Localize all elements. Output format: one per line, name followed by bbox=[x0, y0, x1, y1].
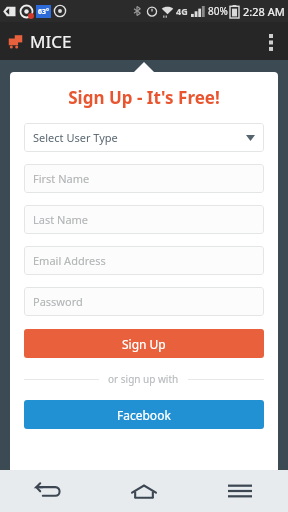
button[interactable]: Back bbox=[0, 470, 96, 512]
staticText: First Name bbox=[33, 171, 90, 186]
staticText: 80% bbox=[208, 4, 228, 18]
button[interactable]: Facebook bbox=[24, 400, 264, 429]
staticText: Sign Up bbox=[122, 336, 166, 352]
staticText: 63° bbox=[38, 7, 49, 17]
staticText: Last Name bbox=[33, 212, 89, 227]
button[interactable]: Password bbox=[24, 287, 264, 316]
staticText: Password bbox=[33, 294, 83, 309]
staticText: Sign Up - It's Free! bbox=[24, 86, 264, 109]
staticText: Email Address bbox=[33, 253, 106, 268]
button[interactable]: Last Name bbox=[24, 205, 264, 234]
staticText: Select User Type bbox=[33, 130, 246, 145]
staticText: 2:28 AM bbox=[243, 4, 285, 19]
button[interactable]: Email Address bbox=[24, 246, 264, 275]
staticText: MICE bbox=[30, 30, 72, 53]
staticText: 4G bbox=[176, 5, 188, 17]
staticText: Facebook bbox=[117, 407, 171, 423]
button[interactable]: More options bbox=[254, 22, 288, 60]
staticText: or sign up with bbox=[108, 372, 179, 386]
button[interactable]: Select User Type bbox=[24, 123, 264, 152]
button[interactable]: Home bbox=[96, 470, 192, 512]
button[interactable]: Menu bbox=[192, 470, 288, 512]
button[interactable]: First Name bbox=[24, 164, 264, 193]
button[interactable]: Sign Up bbox=[24, 329, 264, 358]
